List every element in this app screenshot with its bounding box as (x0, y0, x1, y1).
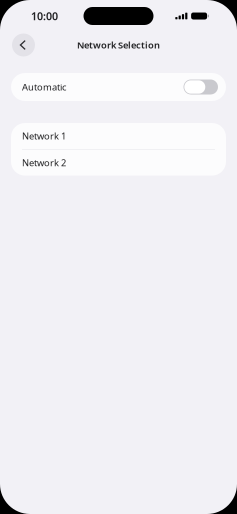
staticText: 10:00 (31, 9, 58, 23)
staticText: Automatic (22, 81, 66, 93)
staticText: Network 1 (22, 130, 66, 142)
staticText: Network Selection (77, 39, 160, 51)
button[interactable]: Automatic (11, 73, 226, 101)
button[interactable]: Network 2 (11, 150, 226, 176)
staticText: Network 2 (22, 156, 66, 169)
button[interactable]: Back (12, 33, 35, 56)
button[interactable]: Network 1 (11, 123, 226, 149)
